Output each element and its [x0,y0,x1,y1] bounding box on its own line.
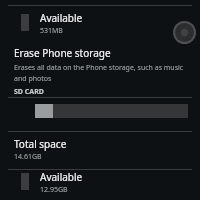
staticText: Erases all data on the Phone storage, su… [14,63,184,73]
staticText: Available [40,170,83,184]
staticText: Available [40,11,83,25]
staticText: 12.95GB [40,185,68,195]
button[interactable]: Available [0,8,200,41]
staticText: 14.61GB [14,152,42,162]
staticText: 531MB [40,26,63,36]
button[interactable]: Erase Phone storage [0,44,200,88]
staticText: SD CARD [14,87,44,97]
button[interactable]: Storage usage chart [173,21,196,44]
button[interactable] [35,104,188,118]
staticText: Total space [14,137,67,151]
button[interactable]: Available [0,172,200,200]
staticText: Erase Phone storage [14,46,111,60]
staticText: and photos [14,74,52,84]
button[interactable]: Total space [0,136,200,166]
